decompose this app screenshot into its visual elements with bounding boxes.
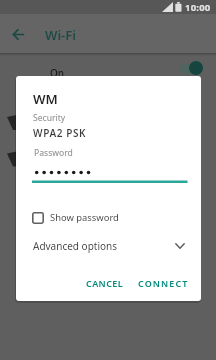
staticText: CONNECT bbox=[138, 277, 189, 289]
staticText: Show password bbox=[50, 211, 119, 224]
staticText: CANCEL bbox=[86, 277, 124, 289]
staticText: Wi-Fi bbox=[45, 26, 76, 44]
staticText: WPA2 PSK bbox=[33, 126, 87, 140]
button[interactable]: CONNECT bbox=[132, 271, 195, 295]
staticText: Security bbox=[33, 112, 66, 124]
staticText: WM bbox=[33, 90, 58, 108]
button[interactable]: CANCEL bbox=[80, 271, 130, 295]
staticText: 10:00 bbox=[185, 1, 211, 14]
staticText: Password bbox=[34, 147, 73, 159]
staticText: On bbox=[50, 66, 65, 80]
button[interactable] bbox=[8, 24, 28, 44]
button[interactable]: Show password bbox=[32, 207, 119, 228]
button[interactable] bbox=[32, 162, 188, 184]
staticText: Advanced options bbox=[33, 239, 118, 253]
button[interactable]: Advanced options bbox=[16, 236, 201, 256]
button[interactable] bbox=[180, 64, 203, 74]
